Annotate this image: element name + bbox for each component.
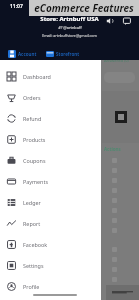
button[interactable]: Coupons	[0, 150, 101, 171]
button[interactable]: Profile	[0, 276, 101, 297]
staticText: #? @artnbuff	[58, 25, 82, 30]
button[interactable]: Sound	[105, 16, 115, 26]
button[interactable]: Settings	[0, 255, 101, 276]
staticText: Report	[23, 220, 41, 227]
staticText: Dashboard	[23, 73, 51, 80]
staticText: 11:07	[10, 3, 23, 10]
staticText: Refund	[23, 115, 42, 122]
staticText: Answered (0)	[104, 58, 129, 63]
staticText: Coupons	[23, 157, 46, 164]
staticText: Products	[23, 136, 46, 143]
staticText: Storefront	[56, 51, 80, 57]
button[interactable]: Ledger	[0, 192, 101, 213]
staticText: eCommerce Features	[34, 1, 134, 15]
button[interactable]: Report	[0, 213, 101, 234]
button[interactable]: Products	[0, 129, 101, 150]
staticText: Payments	[23, 178, 48, 185]
staticText: Store: Artnbuff USA	[40, 15, 99, 23]
button[interactable]: Messages	[122, 16, 132, 26]
staticText: Ledger	[23, 199, 41, 206]
button[interactable]: Payments	[0, 171, 101, 192]
staticText: Account	[18, 51, 37, 57]
staticText: Facebook	[23, 241, 48, 248]
button[interactable]: Account	[6, 48, 39, 60]
staticText: Profile	[23, 283, 40, 290]
button[interactable]: Refund	[0, 108, 101, 129]
button[interactable]: Facebook	[0, 234, 101, 255]
staticText: Actions	[104, 146, 121, 152]
button[interactable]: Orders	[0, 87, 101, 108]
staticText: Settings	[23, 262, 44, 269]
staticText: Email: artnbuffstore@gmail.com	[42, 33, 97, 38]
staticText: Orders	[23, 94, 41, 101]
button[interactable]: Dashboard	[0, 66, 101, 87]
button[interactable]: Storefront	[44, 48, 82, 60]
